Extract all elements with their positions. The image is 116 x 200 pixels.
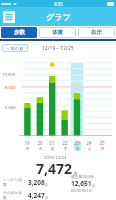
staticText: 歩 <box>73 171 78 177</box>
button[interactable]: 25 <box>96 140 108 151</box>
button[interactable]: 24 <box>83 140 95 151</box>
staticText: 歩 <box>92 184 96 188</box>
staticText: そのほか歩数 <box>3 190 26 200</box>
staticText: 土 <box>87 146 92 151</box>
staticText: 23 <box>74 140 80 146</box>
button[interactable]: 21 <box>46 140 58 151</box>
staticText: 9:30 <box>54 1 63 7</box>
button[interactable]: 血圧 <box>78 27 115 38</box>
staticText: 木 <box>63 146 68 151</box>
staticText: 25 <box>99 140 105 146</box>
staticText: 12,651 <box>71 179 92 188</box>
button[interactable]: 体重 <box>39 27 76 38</box>
staticText: 22 <box>62 140 68 146</box>
button[interactable]: 19 <box>21 140 33 151</box>
button[interactable]: 23 <box>71 140 83 151</box>
staticText: 水 <box>50 146 55 151</box>
staticText: 金 <box>75 146 80 151</box>
staticText: 7,472 <box>36 159 73 178</box>
staticText: 歩 <box>45 196 49 200</box>
staticText: 3,208 <box>28 178 45 187</box>
staticText: グラフ <box>46 12 71 22</box>
staticText: < 前の週 <box>7 45 24 51</box>
staticText: 月 <box>25 146 30 151</box>
button[interactable]: Menu <box>3 11 15 23</box>
staticText: 体重 <box>52 29 63 36</box>
button[interactable]: 20 <box>34 140 46 151</box>
staticText: 24 <box>86 140 92 146</box>
staticText: 20 <box>37 140 43 146</box>
staticText: 過去最高記録 <box>71 174 94 179</box>
staticText: 歩 <box>45 183 49 187</box>
staticText: 血圧 <box>91 29 102 36</box>
staticText: 19 <box>24 140 30 146</box>
button[interactable]: < 前の週 <box>2 44 28 52</box>
staticText: 歩数 <box>14 29 25 36</box>
staticText: 8,000 <box>5 85 16 91</box>
button[interactable]: 22 <box>59 140 71 151</box>
staticText: 5,000 <box>5 105 16 111</box>
staticText: 火 <box>38 146 43 151</box>
staticText: しっかり歩数 <box>3 177 26 187</box>
staticText: (2016/10/12) <box>71 188 92 193</box>
staticText: 12/19～12/25 <box>42 45 74 52</box>
staticText: 10,000 <box>2 72 16 78</box>
staticText: 4,247 <box>28 191 45 200</box>
staticText: 日 <box>100 146 105 151</box>
staticText: 2016/12/23 <box>44 155 67 161</box>
staticText: 21 <box>49 140 55 146</box>
button[interactable]: 歩数 <box>1 27 37 38</box>
